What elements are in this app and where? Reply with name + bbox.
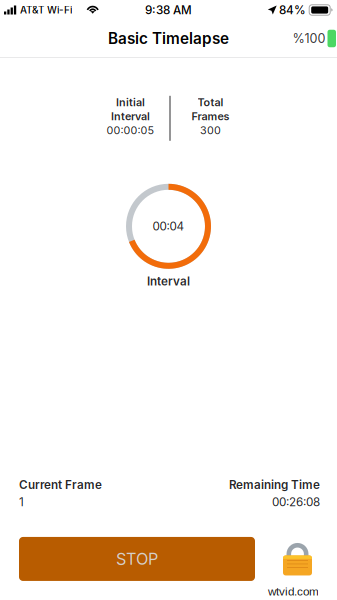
staticText: Remaining Time [229,478,320,492]
staticText: Frames [191,110,229,123]
button[interactable]: STOP [19,537,255,581]
staticText: Interval [147,274,190,288]
staticText: %100 [292,31,325,46]
staticText: wtvid.com [268,585,319,598]
staticText: 9:38 AM [145,3,192,17]
staticText: 84% [279,3,306,17]
staticText: 00:00:05 [106,124,154,137]
button[interactable]: Lock [283,542,312,575]
staticText: 300 [200,124,221,137]
staticText: Interval [111,110,150,123]
staticText: STOP [116,549,158,569]
staticText: 00:26:08 [272,495,320,509]
staticText: 1 [19,495,24,509]
staticText: Basic Timelapse [108,29,229,48]
staticText: Initial [116,96,145,109]
staticText: 00:04 [152,219,184,233]
staticText: AT&T Wi-Fi [20,4,72,16]
staticText: Current Frame [19,478,102,492]
staticText: Total [197,96,223,109]
